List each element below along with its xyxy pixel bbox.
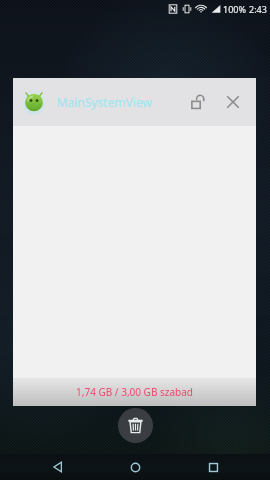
button[interactable]: Home bbox=[115, 454, 155, 480]
button[interactable]: Recents bbox=[193, 454, 233, 480]
staticText: 100% bbox=[223, 3, 246, 15]
staticText: 2:43 bbox=[249, 3, 267, 15]
button[interactable]: Close bbox=[214, 83, 252, 121]
button[interactable]: Unlock bbox=[180, 85, 214, 119]
button[interactable]: Delete bbox=[118, 408, 153, 443]
button[interactable]: Back bbox=[38, 454, 78, 480]
staticText: MainSystemView bbox=[57, 94, 180, 110]
staticText: 1,74 GB / 3,00 GB szabad bbox=[76, 385, 193, 399]
